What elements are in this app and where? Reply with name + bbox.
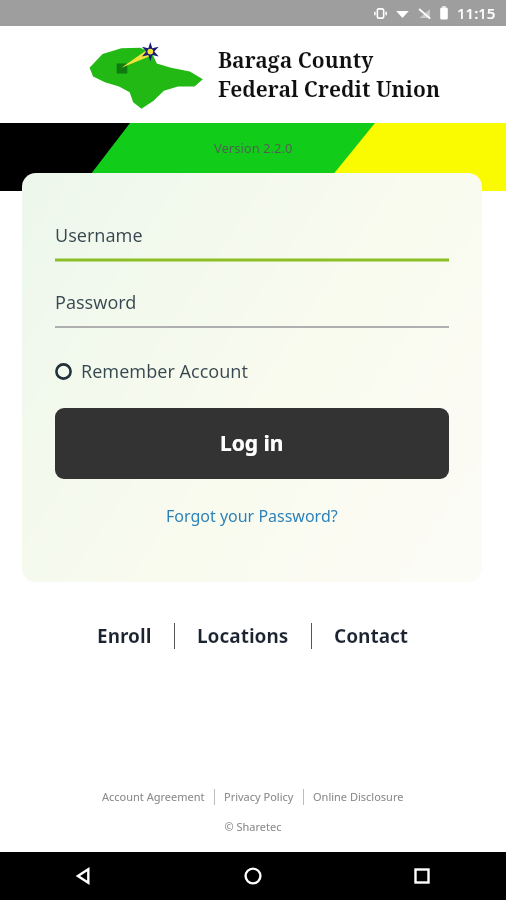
button[interactable]: Privacy Policy [215, 785, 303, 808]
staticText: © Sharetec [224, 819, 282, 834]
staticText: Version 2.2.0 [214, 139, 293, 157]
button[interactable]: Log in [55, 408, 449, 479]
staticText: Contact [334, 623, 409, 649]
button[interactable]: Recent apps [337, 852, 506, 900]
button[interactable]: Account Agreement [93, 785, 214, 808]
button[interactable]: Remember Account [55, 359, 449, 384]
button[interactable]: Password [55, 290, 449, 330]
staticText: Forgot your Password? [166, 505, 338, 527]
button[interactable]: Online Disclosure [304, 785, 413, 808]
staticText: Username [55, 223, 143, 248]
button[interactable]: Locations [175, 617, 311, 655]
staticText: 11:15 [457, 3, 496, 23]
button[interactable]: Forgot your Password? [55, 505, 449, 527]
staticText: Remember Account [81, 359, 248, 384]
staticText: Locations [197, 623, 289, 649]
staticText: Password [55, 290, 137, 315]
staticText: Log in [220, 429, 284, 458]
button[interactable]: Contact [312, 617, 431, 655]
staticText: Federal Credit Union [218, 75, 440, 104]
staticText: Baraga County [218, 46, 374, 75]
button[interactable]: Home [168, 852, 337, 900]
staticText: Account Agreement [102, 789, 205, 804]
staticText: Enroll [97, 623, 152, 649]
button[interactable]: Back [0, 852, 168, 900]
staticText: Online Disclosure [313, 789, 404, 804]
button[interactable]: Enroll [75, 617, 174, 655]
button[interactable]: Username [55, 223, 449, 263]
staticText: Privacy Policy [224, 789, 294, 804]
